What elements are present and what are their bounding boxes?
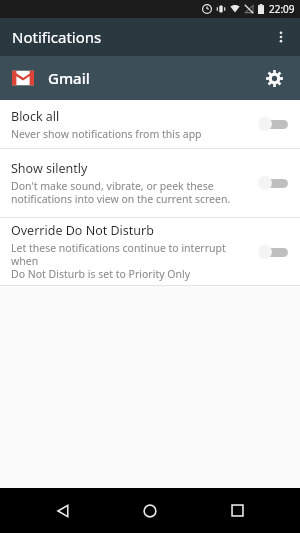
staticText: 22:09 bbox=[269, 2, 295, 16]
button[interactable]: More options bbox=[262, 18, 300, 56]
staticText: Show silently bbox=[11, 160, 88, 177]
button[interactable]: Recent apps bbox=[213, 488, 261, 533]
button[interactable]: Block all bbox=[0, 100, 300, 148]
staticText: Block all bbox=[11, 108, 60, 125]
button[interactable]: Gmail bbox=[0, 56, 300, 100]
button[interactable]: Back bbox=[39, 488, 87, 533]
staticText: Override Do Not Disturb bbox=[11, 222, 154, 239]
button[interactable]: Block all toggle bbox=[246, 100, 300, 148]
staticText: Notifications bbox=[12, 27, 102, 47]
button[interactable]: Override Do Not Disturb bbox=[0, 218, 300, 285]
staticText: Let these notifications continue to inte… bbox=[11, 241, 242, 281]
staticText: Gmail bbox=[48, 68, 90, 88]
button[interactable]: Show silently bbox=[0, 149, 300, 217]
button[interactable]: Override Do Not Disturb toggle bbox=[246, 218, 300, 285]
button[interactable]: App settings bbox=[252, 56, 296, 100]
staticText: Don't make sound, vibrate, or peek these… bbox=[11, 179, 231, 206]
button[interactable]: Home bbox=[126, 488, 174, 533]
button[interactable]: Show silently toggle bbox=[246, 149, 300, 217]
staticText: Never show notifications from this app bbox=[11, 127, 202, 141]
